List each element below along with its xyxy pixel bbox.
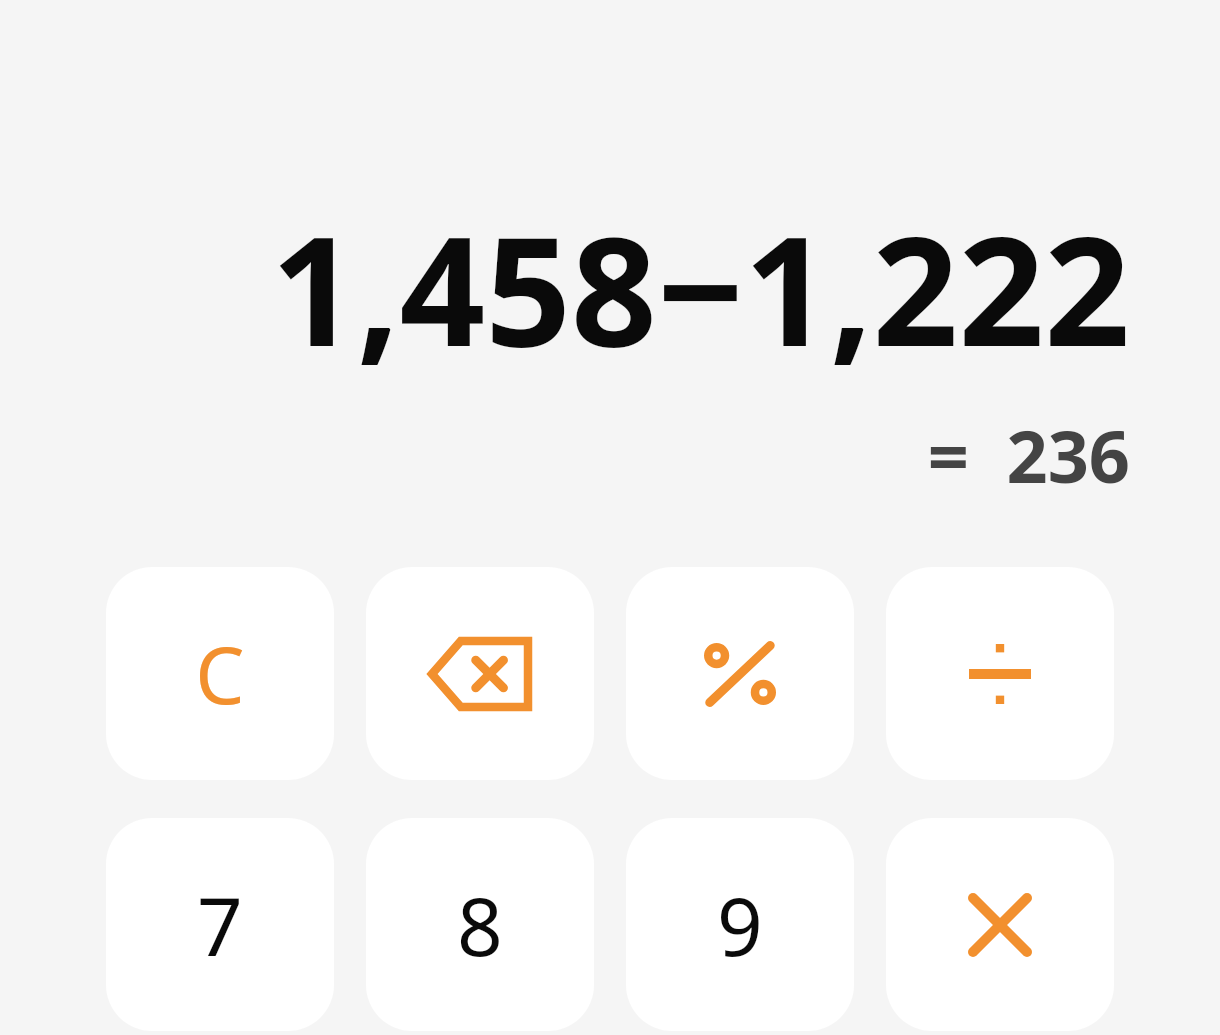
button[interactable]: 7 [106, 818, 334, 1031]
button[interactable]: 9 [626, 818, 854, 1031]
button[interactable]: Percent [626, 567, 854, 780]
button[interactable]: 8 [366, 818, 594, 1031]
button[interactable]: C [106, 567, 334, 780]
staticText: = 236 [90, 406, 1130, 504]
staticText: 8 [457, 870, 503, 979]
button[interactable]: Multiply [886, 818, 1114, 1031]
staticText: 7 [197, 870, 243, 979]
staticText: 9 [717, 870, 763, 979]
button[interactable]: Backspace [366, 567, 594, 780]
staticText: 1,458−1,222 [90, 186, 1130, 390]
button[interactable]: Divide [886, 567, 1114, 780]
staticText: C [195, 621, 245, 727]
